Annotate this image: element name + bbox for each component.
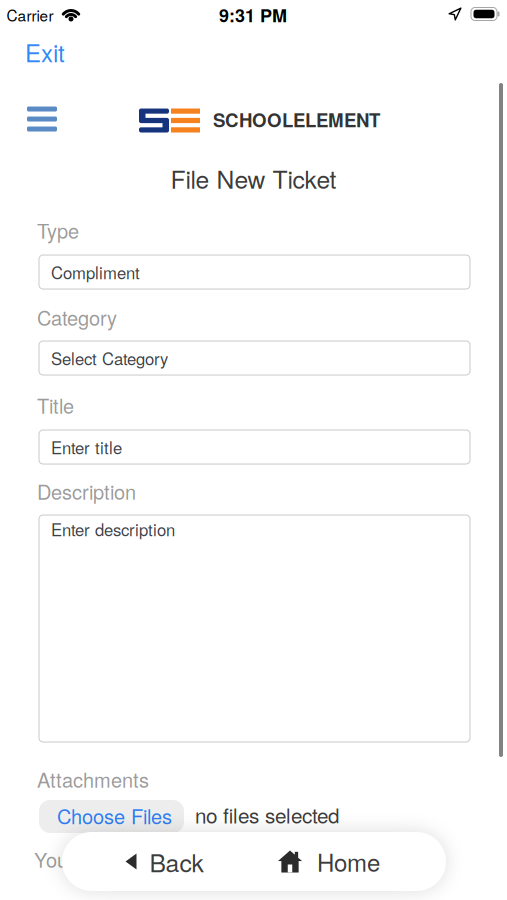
button[interactable]: Choose Files <box>39 800 184 833</box>
staticText: Choose Files <box>57 801 172 830</box>
staticText: Compliment <box>51 260 140 284</box>
staticText: Carrier <box>6 4 53 26</box>
staticText: Home <box>317 844 380 879</box>
button[interactable]: Exit <box>25 35 65 69</box>
staticText: Attachments <box>37 765 149 793</box>
staticText: 9:31 PM <box>219 2 287 28</box>
staticText: File New Ticket <box>170 160 336 196</box>
button[interactable]: Back <box>94 832 234 891</box>
staticText: You <box>34 845 68 873</box>
button[interactable]: Compliment <box>39 255 470 289</box>
button[interactable]: Menu <box>22 102 62 136</box>
staticText: Back <box>149 844 203 879</box>
staticText: Type <box>37 216 79 244</box>
staticText: Exit <box>25 35 65 69</box>
staticText: Select Category <box>51 346 168 370</box>
staticText: Description <box>37 477 136 505</box>
button[interactable]: Home <box>254 832 404 891</box>
staticText: no files selected <box>195 800 339 829</box>
staticText: SCHOOLELEMENT <box>213 106 380 133</box>
button[interactable]: Enter description <box>39 515 470 742</box>
staticText: Enter title <box>51 435 122 459</box>
button[interactable]: Select Category <box>39 341 470 375</box>
staticText: Enter description <box>51 517 175 541</box>
staticText: Title <box>37 391 74 419</box>
button[interactable]: Enter title <box>39 430 470 464</box>
staticText: Category <box>37 303 117 331</box>
